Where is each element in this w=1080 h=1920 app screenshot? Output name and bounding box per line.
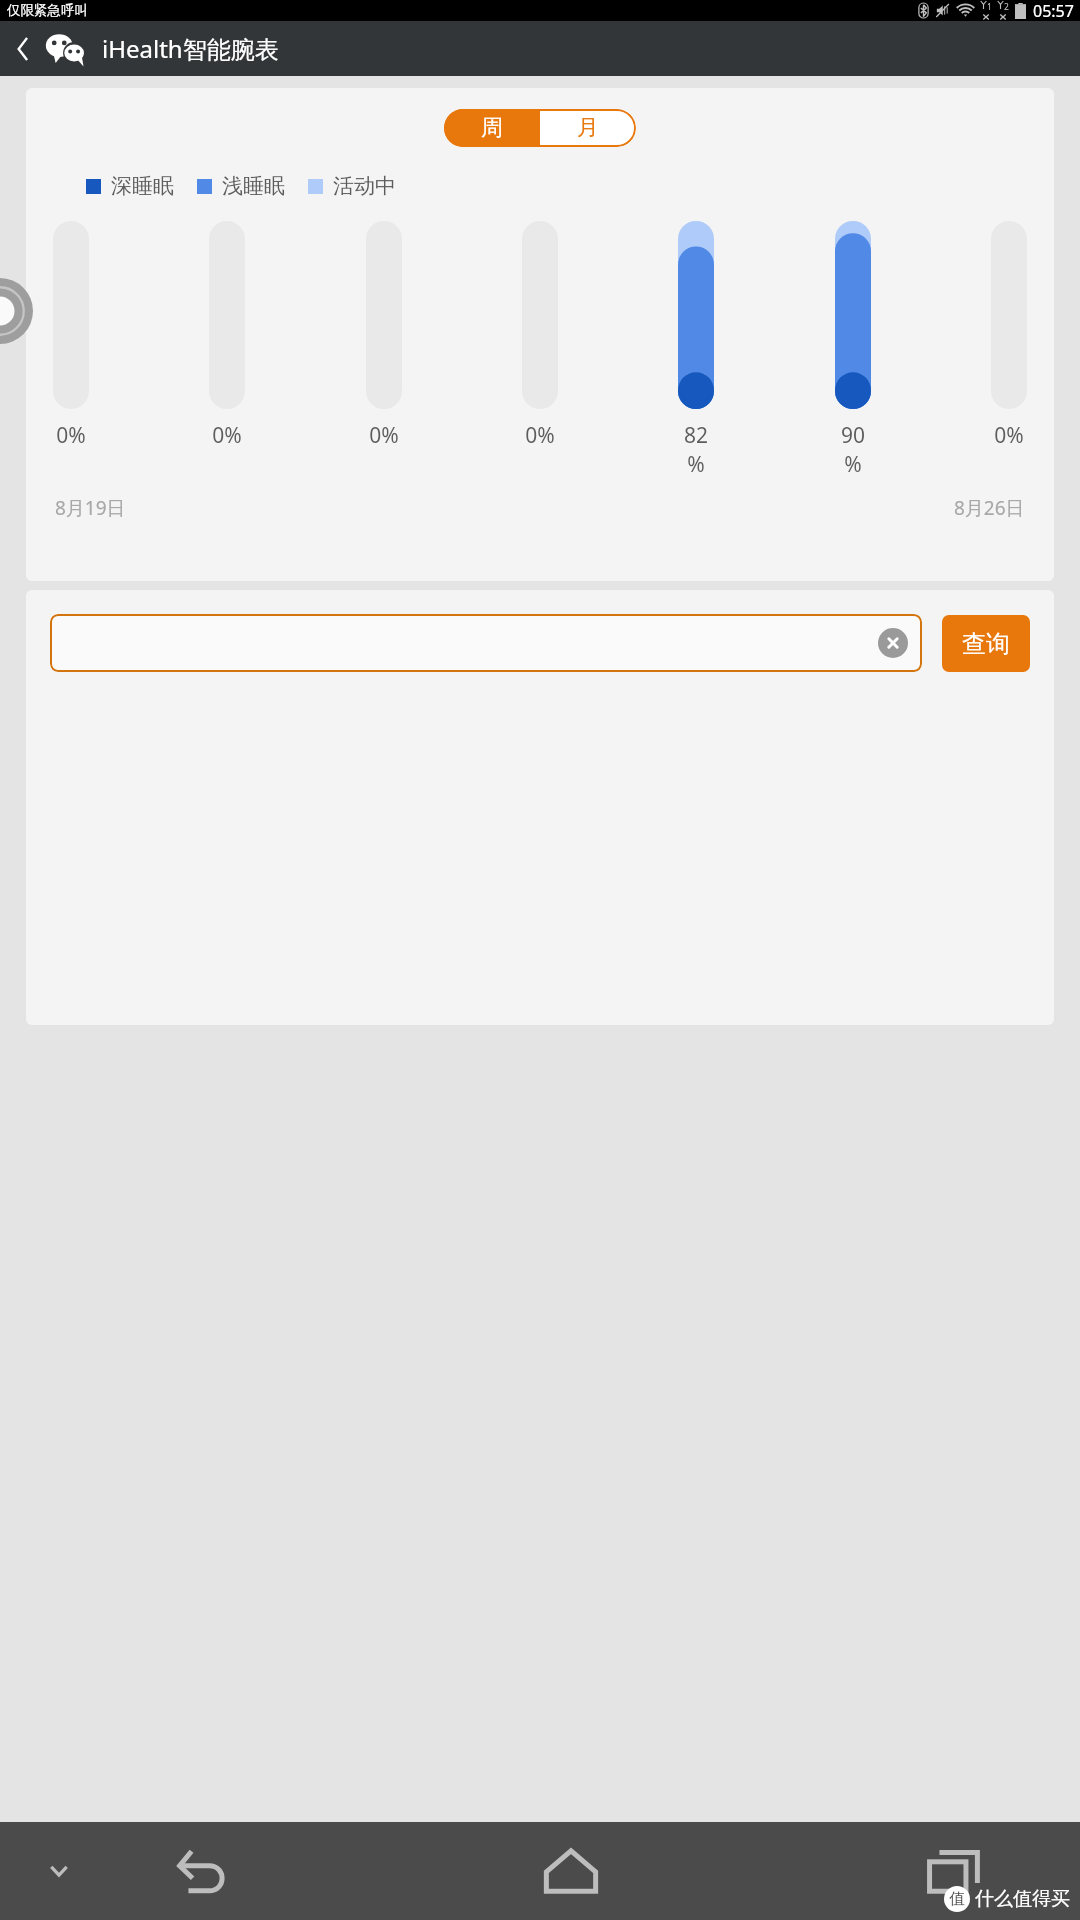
other: Assistive touch (0, 278, 33, 344)
staticText: iHealth智能腕表 (102, 32, 279, 65)
staticText: 深睡眠 (111, 173, 174, 199)
staticText: 浅睡眠 (222, 173, 285, 199)
staticText: 1 (987, 1, 992, 13)
staticText: 0% (525, 421, 555, 450)
staticText: 周 (481, 114, 503, 142)
staticText: 活动中 (333, 173, 396, 199)
button[interactable]: 周 (444, 109, 540, 147)
button[interactable]: Hide (0, 1822, 118, 1920)
button[interactable]: Clear (50, 614, 922, 672)
button[interactable]: Back (0, 21, 44, 76)
button[interactable]: 查询 (942, 615, 1030, 672)
staticText: 8月26日 (954, 495, 1025, 521)
staticText: 82% (678, 421, 714, 479)
button[interactable]: Recent apps (854, 1822, 1054, 1920)
button[interactable]: 月 (540, 109, 636, 147)
staticText: 什么值得买 (975, 1887, 1070, 1911)
staticText: 查询 (962, 629, 1010, 659)
staticText: 月 (577, 114, 599, 142)
staticText: 05:57 (1033, 0, 1074, 21)
staticText: 2 (1004, 1, 1009, 13)
staticText: 0% (56, 421, 86, 450)
button[interactable]: Home (471, 1822, 671, 1920)
staticText: 8月19日 (55, 495, 126, 521)
staticText: 0% (369, 421, 399, 450)
staticText: 0% (212, 421, 242, 450)
button[interactable]: Back (118, 1822, 288, 1920)
staticText: 仅限紧急呼叫 (7, 2, 88, 19)
staticText: 值 (949, 1889, 965, 1909)
staticText: 0% (994, 421, 1024, 450)
button[interactable]: Clear (878, 628, 908, 658)
staticText: 90% (835, 421, 871, 479)
